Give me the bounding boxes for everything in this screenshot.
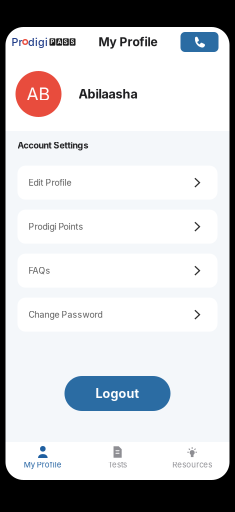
staticText: My Profile	[24, 460, 62, 469]
button[interactable]: Resources	[155, 442, 229, 480]
staticText: S	[70, 38, 74, 46]
staticText: S	[64, 38, 68, 46]
staticText: Abilaasha	[78, 86, 137, 102]
button[interactable]: Call support	[180, 32, 218, 52]
staticText: Account Settings	[17, 140, 88, 151]
staticText: FAQs	[28, 265, 50, 276]
staticText: A	[57, 38, 61, 46]
button[interactable]: Change Password	[17, 298, 217, 332]
staticText: Edit Profile	[28, 177, 71, 188]
button[interactable]: Edit Profile	[17, 166, 217, 200]
staticText: P	[50, 38, 54, 46]
staticText: Change Password	[28, 309, 102, 320]
staticText: Logout	[95, 386, 139, 401]
staticText: Tests	[108, 460, 127, 469]
staticText: Pr	[11, 35, 22, 48]
staticText: Prodigi Points	[28, 221, 83, 232]
staticText: Resources	[172, 460, 212, 469]
button[interactable]: FAQs	[17, 254, 217, 288]
staticText: My Profile	[98, 35, 157, 49]
staticText: AB	[26, 83, 50, 105]
button[interactable]: Logout	[64, 376, 170, 411]
button[interactable]: Tests	[80, 442, 155, 480]
button[interactable]: My Profile	[5, 442, 80, 480]
button[interactable]: Prodigi Points	[17, 210, 217, 244]
staticText: digi	[28, 35, 48, 48]
